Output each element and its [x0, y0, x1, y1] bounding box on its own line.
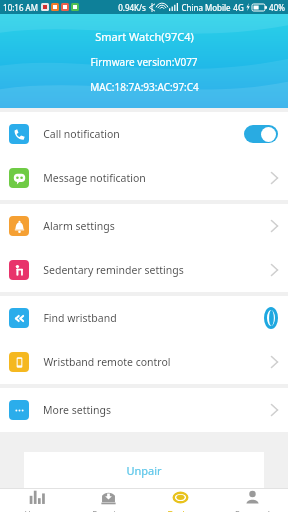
button[interactable]: Device: [144, 489, 216, 512]
staticText: Alarm settings: [43, 219, 115, 233]
button[interactable]: Call notification toggle, on: [244, 125, 278, 143]
staticText: Device: [167, 509, 194, 512]
button[interactable]: Message notification: [0, 156, 288, 200]
button[interactable]: Exercise: [72, 489, 144, 512]
staticText: Unpair: [126, 463, 162, 478]
staticText: Message notification: [43, 171, 146, 185]
button[interactable]: Sedentary reminder settings: [0, 248, 288, 292]
staticText: 40%: [269, 2, 285, 13]
button[interactable]: Find wristband: [0, 296, 288, 340]
staticText: Find wristband: [43, 311, 117, 325]
staticText: China Mobile: [181, 2, 231, 13]
button[interactable]: Home: [0, 489, 72, 512]
staticText: Personal: [235, 509, 270, 512]
button[interactable]: Alarm settings: [0, 204, 288, 248]
staticText: 4G: [233, 2, 244, 13]
staticText: Sedentary reminder settings: [43, 263, 184, 277]
staticText: Home: [24, 509, 49, 512]
button[interactable]: Unpair: [24, 452, 264, 488]
staticText: Wristband remote control: [43, 355, 171, 369]
staticText: Exercise: [92, 509, 125, 512]
staticText: MAC:18:7A:93:AC:97:C4: [90, 80, 199, 94]
button[interactable]: Personal: [216, 489, 288, 512]
button[interactable]: Find wristband: [264, 307, 278, 329]
button[interactable]: Wristband remote control: [0, 340, 288, 384]
staticText: 10:16 AM: [3, 2, 38, 13]
button[interactable]: More settings: [0, 388, 288, 432]
staticText: More settings: [43, 403, 111, 417]
staticText: Firmware version:V077: [90, 55, 198, 69]
button[interactable]: Call notification: [0, 112, 288, 156]
staticText: Call notification: [43, 127, 120, 141]
staticText: Smart Watch(97C4): [95, 29, 194, 44]
staticText: 0.94K/s: [118, 2, 146, 13]
